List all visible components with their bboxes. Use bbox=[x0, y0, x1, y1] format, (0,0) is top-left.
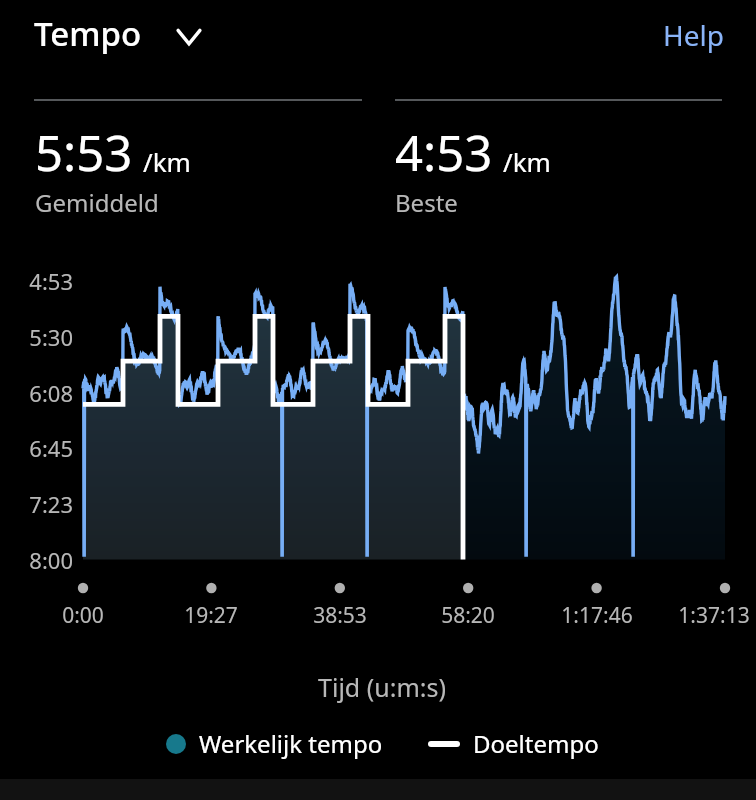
staticText: /km bbox=[503, 144, 551, 179]
staticText: 5:53 bbox=[35, 119, 133, 186]
staticText: Beste bbox=[395, 186, 458, 219]
button[interactable]: Werkelijk tempo bbox=[162, 722, 387, 765]
staticText: 1:37:13 bbox=[599, 601, 756, 630]
staticText: 58:20 bbox=[353, 601, 583, 630]
button[interactable]: 4:53 bbox=[393, 117, 553, 221]
staticText: 1:17:46 bbox=[482, 601, 712, 630]
staticText: 5:30 bbox=[0, 322, 73, 352]
staticText: 7:23 bbox=[0, 489, 73, 519]
other: Show metric picker bbox=[176, 19, 202, 49]
staticText: 6:08 bbox=[0, 378, 73, 408]
staticText: Werkelijk tempo bbox=[199, 727, 383, 760]
staticText: 19:27 bbox=[96, 601, 326, 630]
staticText: Tijd (u:m:s) bbox=[232, 670, 532, 704]
staticText: 4:53 bbox=[0, 266, 73, 296]
staticText: /km bbox=[143, 144, 191, 179]
staticText: 4:53 bbox=[395, 119, 493, 186]
staticText: Help bbox=[663, 16, 724, 54]
staticText: 0:00 bbox=[0, 601, 198, 630]
button[interactable]: Doeltempo bbox=[425, 722, 603, 765]
staticText: 6:45 bbox=[0, 433, 73, 463]
staticText: Gemiddeld bbox=[35, 186, 159, 219]
staticText: Doeltempo bbox=[473, 727, 599, 760]
button[interactable]: Help bbox=[649, 8, 738, 62]
staticText: Tempo bbox=[34, 11, 142, 56]
button[interactable]: 5:53 bbox=[33, 117, 193, 221]
staticText: 8:00 bbox=[0, 545, 73, 575]
button[interactable]: Tempo bbox=[22, 3, 214, 64]
staticText: 38:53 bbox=[225, 601, 455, 630]
